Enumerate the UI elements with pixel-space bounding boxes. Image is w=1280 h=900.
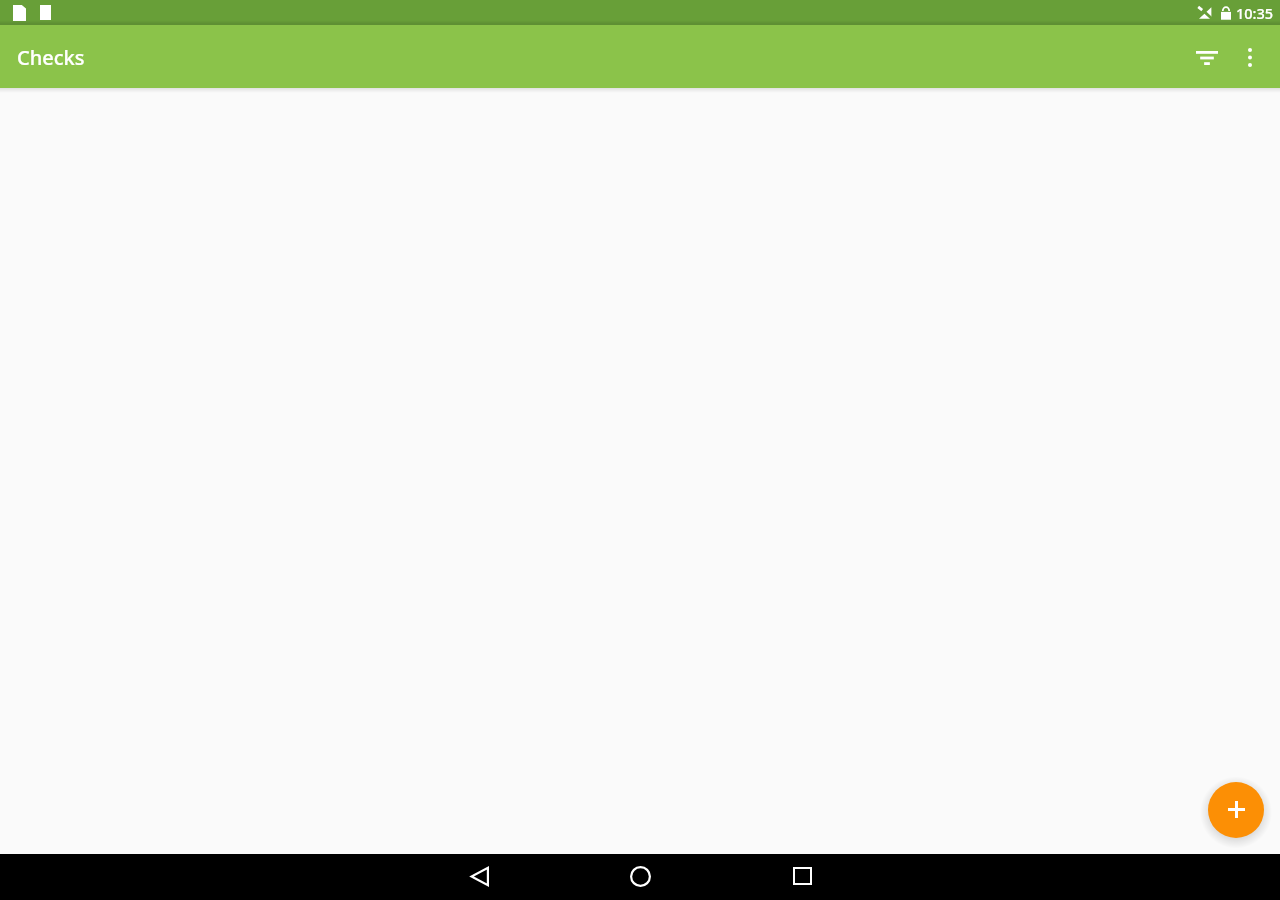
staticText: 10:35 [1236,3,1274,23]
staticText: Checks [17,44,85,71]
button[interactable]: Recent apps [779,854,825,900]
button[interactable]: Back [456,854,502,900]
button[interactable]: More options [1226,33,1274,81]
button[interactable]: Add check [1208,782,1264,838]
button[interactable]: Filter [1178,33,1226,81]
button[interactable]: Home [617,854,663,900]
